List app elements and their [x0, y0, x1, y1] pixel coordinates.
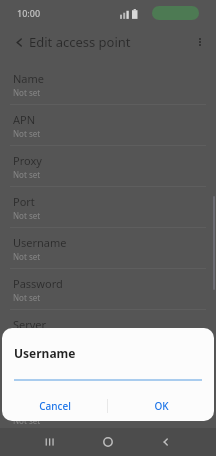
staticText: Proxy	[13, 153, 42, 168]
staticText: MMS port	[13, 440, 64, 450]
staticText: Not set	[13, 210, 41, 221]
button[interactable]: Password	[0, 269, 216, 310]
button[interactable]: Home	[94, 428, 122, 456]
staticText: Name	[13, 71, 45, 86]
button[interactable]: Port	[0, 187, 216, 228]
button[interactable]: Navigate up	[6, 29, 32, 55]
button[interactable]: MMS port	[0, 433, 216, 456]
staticText: 10:00	[17, 7, 41, 19]
staticText: Not set	[13, 292, 41, 303]
button[interactable]: Back	[152, 428, 180, 456]
staticText: Username	[14, 345, 76, 361]
staticText: Not set	[13, 374, 41, 385]
staticText: Not set	[13, 128, 41, 139]
staticText: Cancel	[39, 399, 71, 413]
button[interactable]: Recent apps	[36, 428, 64, 456]
staticText: Server	[13, 317, 47, 332]
staticText: MMS proxy	[13, 399, 71, 414]
staticText: Not set	[13, 169, 41, 180]
staticText: OK	[154, 399, 169, 413]
staticText: Edit access point	[29, 33, 131, 51]
staticText: Not set	[13, 415, 41, 426]
button[interactable]: APN	[0, 105, 216, 146]
button[interactable]: OK	[108, 393, 214, 419]
button[interactable]: Server	[0, 310, 216, 351]
button[interactable]: MMS proxy	[0, 392, 216, 433]
staticText: Username	[13, 235, 67, 250]
staticText: Port	[13, 194, 35, 209]
staticText: Password	[13, 276, 63, 291]
button[interactable]: Cancel	[2, 393, 107, 419]
button[interactable]: Username	[0, 228, 216, 269]
button[interactable]: Name	[0, 64, 216, 105]
button[interactable]: MMSC	[0, 351, 216, 392]
staticText: Not set	[13, 251, 41, 262]
staticText: Not set	[13, 87, 41, 98]
button[interactable]: Proxy	[0, 146, 216, 187]
staticText: APN	[13, 112, 36, 127]
button[interactable]: More options	[187, 29, 213, 55]
